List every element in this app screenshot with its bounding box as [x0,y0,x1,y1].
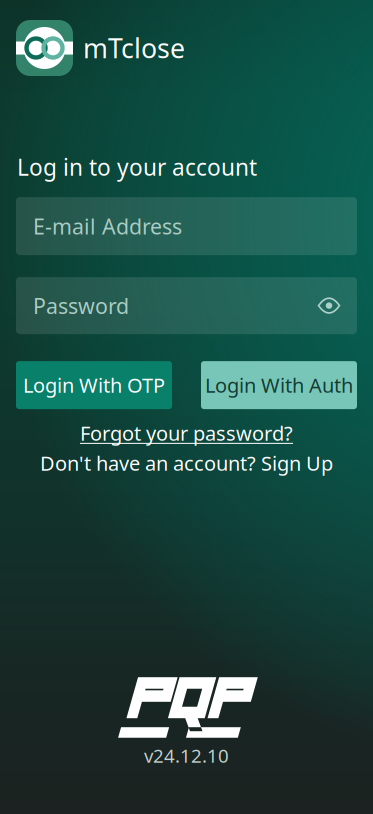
staticText: Login With OTP [23,372,165,398]
staticText: Log in to your account [17,152,257,182]
button[interactable]: Login With OTP [16,361,172,409]
staticText: Password [33,291,129,320]
staticText: v24.12.10 [144,743,229,768]
button[interactable]: Forgot your password? [0,422,373,444]
staticText: mTclose [83,30,185,66]
staticText: Login With Auth [205,372,353,398]
button[interactable]: Don't have an account? Sign Up [0,452,373,474]
staticText: E-mail Address [33,212,182,240]
button[interactable]: Login With Auth [201,361,357,409]
staticText: Don't have an account? Sign Up [40,450,333,476]
staticText: Forgot your password? [80,420,293,446]
